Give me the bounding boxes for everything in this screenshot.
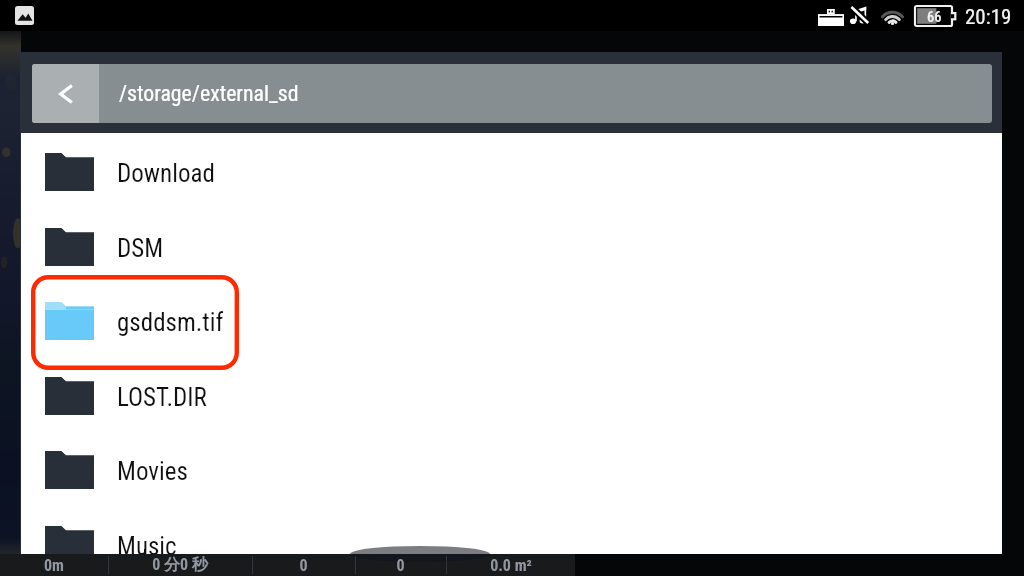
button[interactable]: Music xyxy=(21,507,1002,554)
button[interactable]: Movies xyxy=(21,432,1002,507)
staticText: 0 分0 秒 xyxy=(152,555,208,575)
staticText: 0 xyxy=(396,556,405,575)
button[interactable]: DSM xyxy=(21,209,1002,284)
staticText: DSM xyxy=(117,234,164,263)
staticText: Download xyxy=(117,159,215,188)
button[interactable]: LOST.DIR xyxy=(21,358,1002,433)
staticText: Movies xyxy=(117,457,188,486)
button[interactable]: 0 xyxy=(252,554,355,576)
staticText: 66 xyxy=(927,9,942,26)
other: Screenshot notification xyxy=(15,6,34,25)
staticText: 0 xyxy=(299,556,308,575)
staticText: 0m xyxy=(44,556,64,575)
staticText: /storage/external_sd xyxy=(119,81,299,107)
staticText: Music xyxy=(117,532,177,554)
button[interactable]: 0m xyxy=(0,554,108,576)
button[interactable]: 0 分0 秒 xyxy=(108,554,252,576)
button[interactable]: 0.0 m² xyxy=(446,554,575,576)
staticText: LOST.DIR xyxy=(117,383,207,412)
button[interactable]: gsddsm.tif xyxy=(21,283,1002,358)
button[interactable]: 0 xyxy=(355,554,446,576)
staticText: 20:19 xyxy=(965,5,1012,30)
staticText: 0.0 m² xyxy=(490,556,532,575)
button[interactable]: Download xyxy=(21,134,1002,209)
button[interactable]: Back xyxy=(32,64,99,123)
staticText: gsddsm.tif xyxy=(117,308,224,337)
